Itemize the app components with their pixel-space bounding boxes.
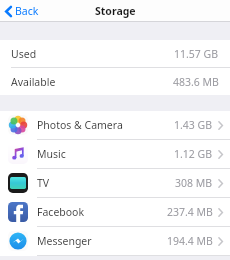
button[interactable]: Back	[0, 1, 47, 21]
button[interactable]: Facebook	[0, 198, 230, 227]
button[interactable]: Music	[0, 140, 230, 169]
staticText: Used	[11, 47, 37, 61]
other: Open Facebook	[218, 208, 223, 217]
staticText: 1.12 GB	[174, 147, 213, 161]
staticText: 483.6 MB	[173, 75, 219, 89]
staticText: 308 MB	[175, 176, 213, 190]
other: Open Music	[218, 150, 223, 159]
staticText: TV	[37, 176, 50, 190]
other: Open Messenger	[218, 237, 223, 246]
staticText: Available	[11, 75, 56, 89]
button[interactable]: Photos & Camera	[0, 111, 230, 140]
button[interactable]: Messenger	[0, 227, 230, 256]
staticText: 194.4 MB	[167, 234, 213, 248]
staticText: 1.43 GB	[174, 118, 213, 132]
staticText: Messenger	[37, 234, 92, 248]
staticText: Storage	[95, 4, 136, 18]
button[interactable]: Available	[0, 68, 230, 95]
staticText: 11.57 GB	[174, 47, 219, 61]
staticText: Music	[37, 147, 66, 161]
button[interactable]: Used	[0, 40, 230, 68]
staticText: Photos & Camera	[37, 118, 123, 132]
other: Open Photos & Camera	[218, 121, 223, 130]
staticText: Back	[15, 4, 39, 18]
staticText: 237.4 MB	[167, 205, 213, 219]
other: Open TV	[218, 179, 223, 188]
button[interactable]: TV	[0, 169, 230, 198]
staticText: Facebook	[37, 205, 85, 219]
